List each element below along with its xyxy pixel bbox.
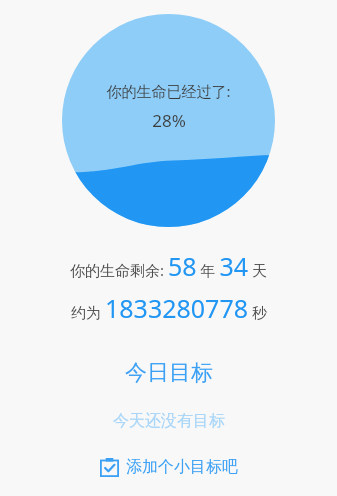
staticText: 你的生命已经过了: — [106, 81, 231, 101]
staticText: 约为 1833280778 秒 — [71, 291, 267, 325]
staticText: 添加个小目标吧 — [126, 457, 238, 477]
button[interactable]: 今日目标 — [113, 357, 225, 389]
button[interactable]: Add goal — [90, 453, 248, 481]
staticText: 今日目标 — [125, 359, 213, 387]
staticText: 你的生命剩余: 58 年 34 天 — [70, 249, 267, 283]
other: Add goal — [100, 458, 119, 477]
staticText: 28% — [152, 109, 186, 132]
staticText: 今天还没有目标 — [113, 411, 225, 431]
